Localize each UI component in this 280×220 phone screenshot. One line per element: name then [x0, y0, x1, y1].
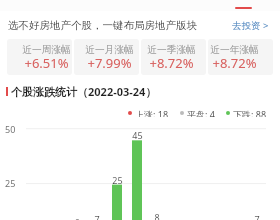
staticText: 选不好房地产个股，一键布局房地产版块 — [8, 19, 197, 32]
staticText: 近一年涨幅 — [210, 44, 259, 56]
staticText: 25 — [5, 177, 16, 189]
staticText: 25 — [112, 174, 123, 186]
button[interactable] — [7, 39, 72, 75]
staticText: 7 — [254, 213, 260, 220]
staticText: 近一季涨幅 — [147, 44, 196, 56]
staticText: +8.72% — [212, 54, 257, 72]
staticText: 近一月涨幅 — [85, 44, 134, 56]
staticText: 平盘: 4 — [187, 108, 215, 117]
staticText: 45 — [132, 129, 143, 141]
staticText: 近一周涨幅 — [22, 44, 71, 56]
staticText: 7 — [94, 213, 100, 220]
staticText: 上涨: 18 — [135, 108, 169, 117]
staticText: 下跌: 88 — [233, 108, 267, 117]
button[interactable]: 选不好房地产个股，一键布局房地产版块 — [0, 14, 280, 36]
staticText: +8.72% — [149, 54, 194, 72]
staticText: 个股涨跌统计（2022-03-24） — [11, 84, 157, 98]
button[interactable] — [208, 39, 273, 75]
button[interactable] — [74, 39, 139, 75]
button[interactable] — [141, 39, 206, 75]
staticText: 6 — [74, 216, 80, 220]
staticText: +6.51% — [24, 54, 69, 72]
staticText: 50 — [5, 123, 16, 135]
staticText: 8 — [154, 211, 160, 220]
staticText: 去投资 > — [232, 19, 269, 32]
staticText: +7.99% — [87, 54, 132, 72]
